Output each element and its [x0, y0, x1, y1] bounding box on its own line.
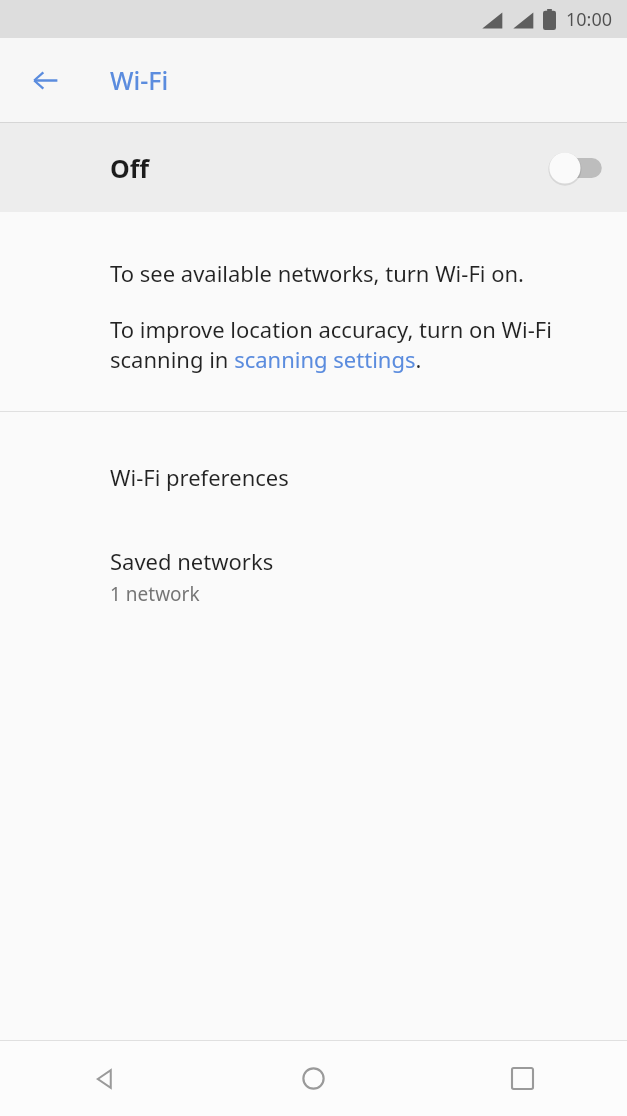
other: Wi-Fi toggle, off — [541, 146, 603, 190]
staticText: Off — [110, 151, 150, 185]
button[interactable]: Back — [0, 1041, 209, 1116]
staticText: Wi-Fi — [110, 63, 169, 97]
button[interactable]: Back — [21, 56, 69, 104]
staticText: Saved networks — [110, 546, 274, 576]
staticText: To see available networks, turn Wi-Fi on… — [110, 258, 524, 288]
staticText: 10:00 — [566, 7, 613, 32]
button[interactable]: To improve location accuracy, turn on Wi… — [0, 314, 627, 375]
staticText: Wi-Fi preferences — [110, 462, 289, 492]
button[interactable]: Home — [209, 1041, 418, 1116]
button[interactable]: Wi-Fi preferences — [0, 412, 627, 520]
staticText: 1 network — [110, 581, 200, 607]
button[interactable]: Saved networks — [0, 520, 627, 629]
staticText: To improve location accuracy, turn on Wi… — [110, 314, 579, 375]
button[interactable]: Recent apps — [418, 1041, 627, 1116]
button[interactable]: Off — [0, 123, 627, 212]
